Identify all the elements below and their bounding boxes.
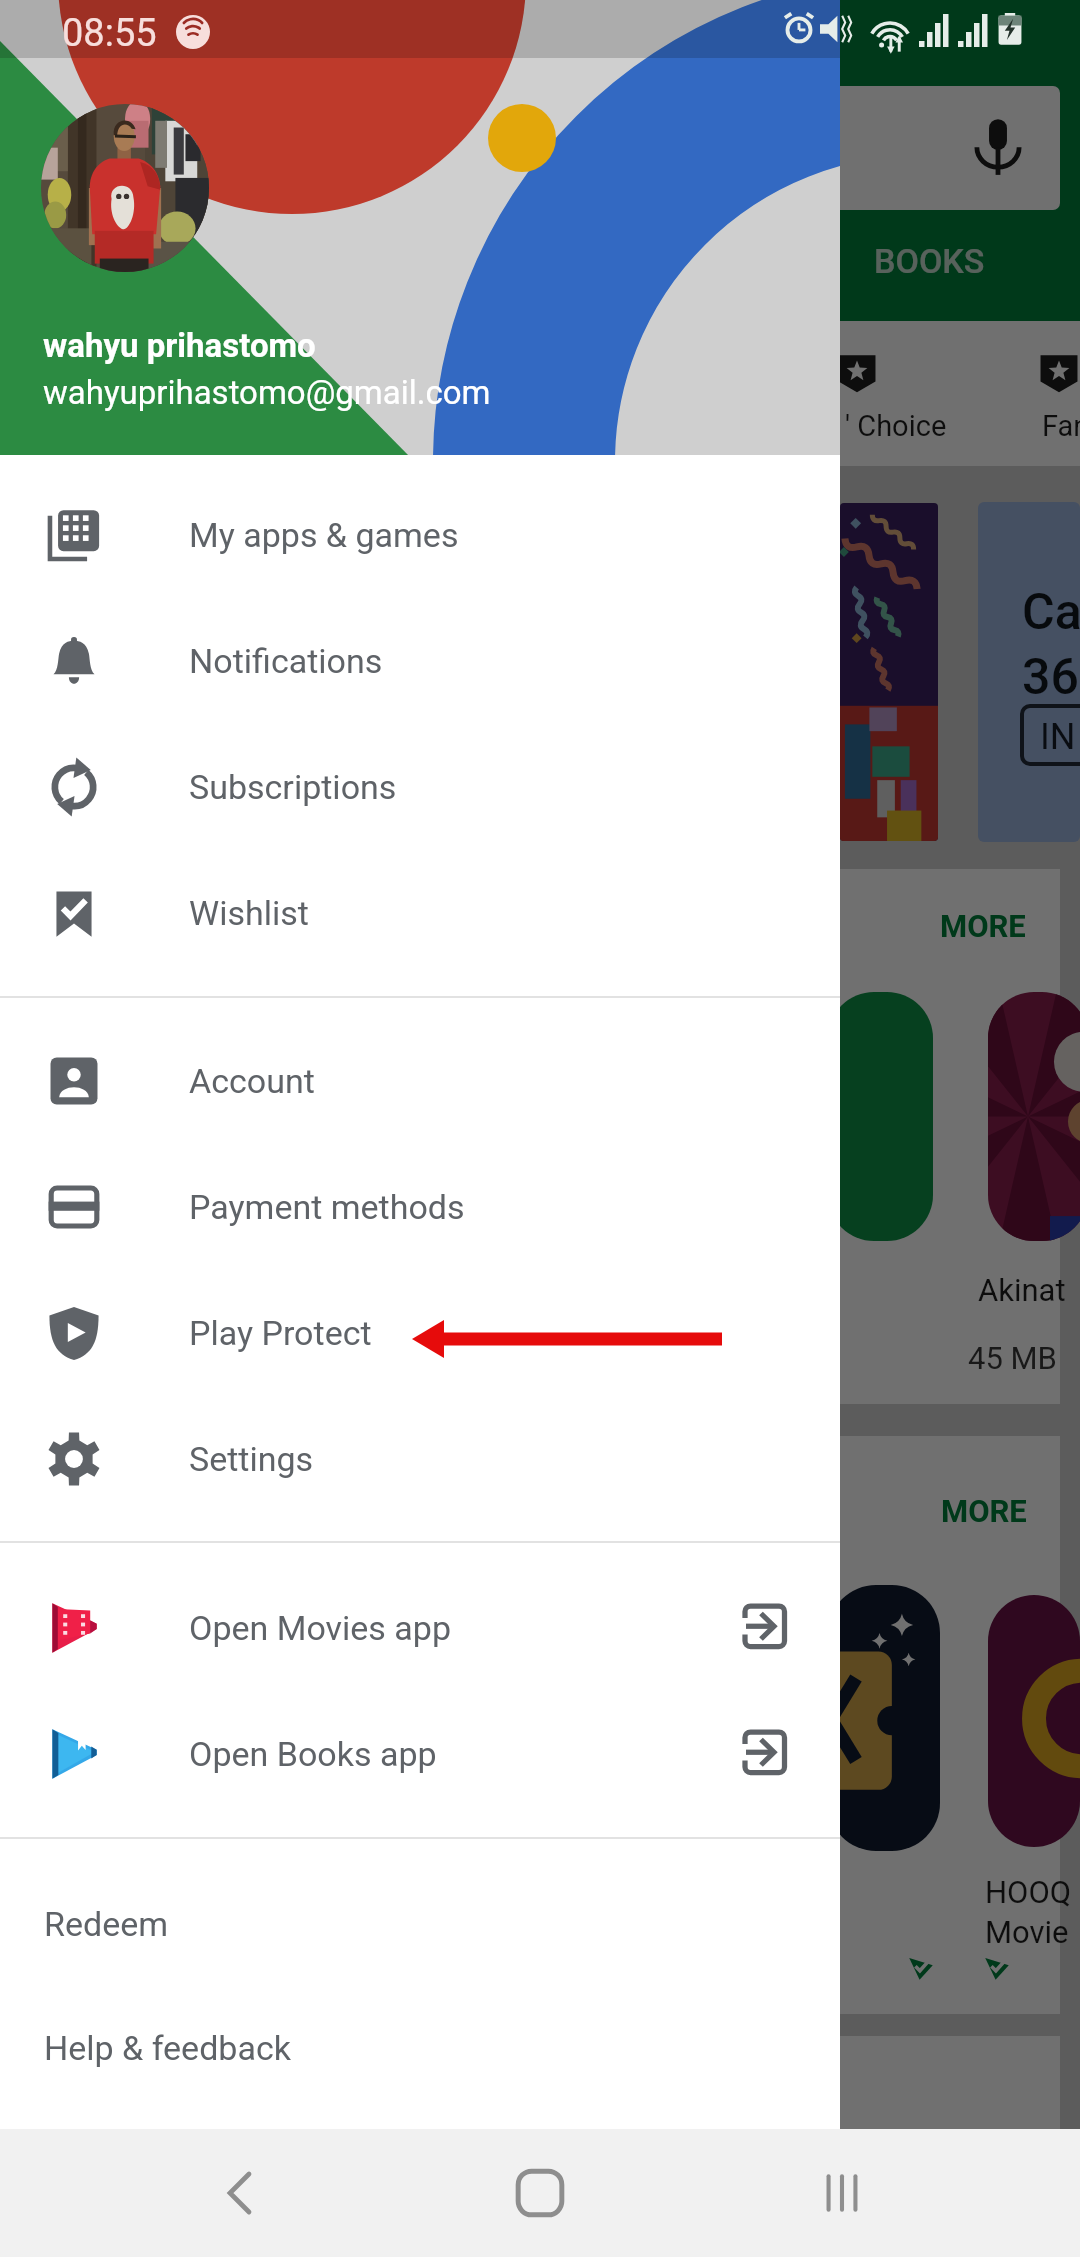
staticText: HOOQ Movie (985, 1874, 1072, 1950)
staticText: Redeem (44, 1904, 169, 1944)
button[interactable]: Play Protect (0, 1270, 840, 1396)
staticText: IN (1040, 716, 1076, 758)
staticText: 08:55 (62, 11, 157, 56)
button[interactable]: Account avatar (41, 104, 209, 272)
staticText: ' Choice (845, 409, 947, 443)
staticText: Notifications (189, 641, 383, 681)
button[interactable]: Payment methods (0, 1144, 840, 1270)
button[interactable]: Recent apps (752, 2129, 932, 2257)
button[interactable]: Open Books app (0, 1691, 840, 1817)
staticText: Account (189, 1061, 315, 1101)
button[interactable]: Open Movies app (0, 1565, 840, 1691)
staticText: Play Protect (189, 1313, 372, 1353)
staticText: Subscriptions (189, 767, 397, 807)
staticText: BOOKS (874, 241, 985, 281)
staticText: wahyuprihastomo@gmail.com (43, 373, 491, 412)
staticText: MORE (941, 1493, 1027, 1529)
button[interactable]: Wishlist (0, 850, 840, 976)
button[interactable]: My apps & games (0, 472, 840, 598)
button[interactable]: Redeem (0, 1862, 840, 1986)
staticText: Settings (189, 1439, 314, 1479)
staticText: Help & feedback (44, 2028, 291, 2068)
button[interactable]: Subscriptions (0, 724, 840, 850)
staticText: Open Books app (189, 1734, 437, 1774)
button[interactable]: Settings (0, 1396, 840, 1522)
other: Open app (741, 1729, 791, 1779)
button[interactable]: Account (0, 1018, 840, 1144)
staticText: MORE (940, 908, 1026, 944)
staticText: wahyu prihastomo (43, 326, 316, 365)
staticText: My apps & games (189, 515, 459, 555)
staticText: Payment methods (189, 1187, 465, 1227)
button[interactable]: Back (150, 2129, 330, 2257)
staticText: Akinat (978, 1272, 1066, 1308)
staticText: Cas 360 (1022, 583, 1080, 706)
other: Open app (741, 1603, 791, 1653)
staticText: 45 MB (968, 1340, 1057, 1376)
staticText: Wishlist (189, 893, 309, 933)
button[interactable]: Help & feedback (0, 1986, 840, 2110)
staticText: Fan (1042, 409, 1080, 443)
button[interactable]: Notifications (0, 598, 840, 724)
staticText: Open Movies app (189, 1608, 451, 1648)
button[interactable]: Home (450, 2129, 630, 2257)
